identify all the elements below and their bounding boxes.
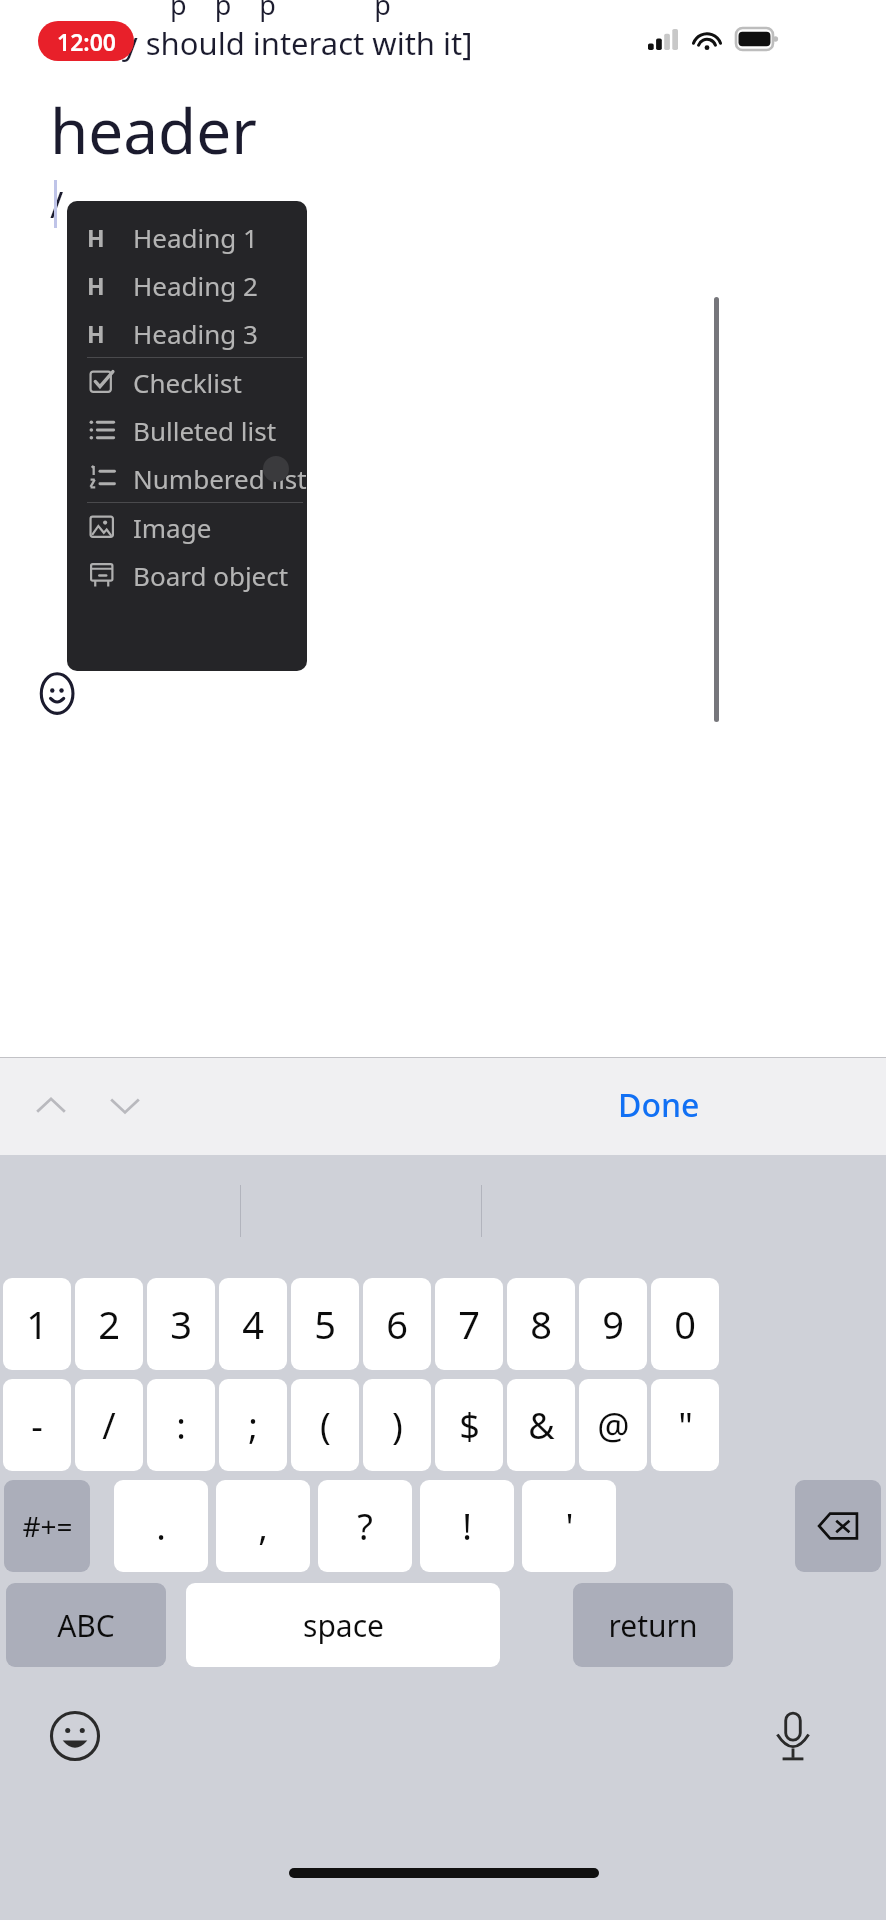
- button[interactable]: space: [186, 1583, 500, 1667]
- button[interactable]: 6: [363, 1278, 431, 1370]
- staticText: 3: [170, 1298, 192, 1350]
- button[interactable]: H3: [67, 309, 307, 357]
- button[interactable]: Image: [67, 503, 307, 551]
- staticText: .: [156, 1502, 166, 1551]
- staticText: @: [597, 1401, 630, 1450]
- staticText: Bulleted list: [133, 413, 277, 448]
- button[interactable]: H2: [67, 261, 307, 309]
- button[interactable]: ,: [216, 1480, 310, 1572]
- staticText: space: [303, 1605, 384, 1646]
- staticText: 8: [530, 1298, 552, 1350]
- button[interactable]: !: [420, 1480, 514, 1572]
- staticText: Board object: [133, 558, 289, 593]
- staticText: ': [565, 1502, 574, 1551]
- staticText: 5: [314, 1298, 336, 1350]
- staticText: 12:00: [57, 26, 116, 57]
- staticText: Numbered list: [133, 461, 307, 496]
- button[interactable]: Backspace: [795, 1480, 881, 1572]
- staticText: (: [320, 1401, 331, 1450]
- staticText: H2: [87, 270, 117, 300]
- staticText: return: [608, 1605, 698, 1646]
- staticText: 9: [602, 1298, 624, 1350]
- button[interactable]: ABC: [6, 1583, 166, 1667]
- button[interactable]: H1: [67, 213, 307, 261]
- staticText: /: [102, 1401, 116, 1450]
- button[interactable]: Board object: [67, 551, 307, 599]
- button[interactable]: $: [435, 1379, 503, 1471]
- staticText: Checklist: [133, 365, 242, 400]
- button[interactable]: Bulleted list: [67, 406, 307, 454]
- button[interactable]: Checklist: [67, 358, 307, 406]
- staticText: Heading 1: [133, 220, 258, 255]
- button[interactable]: Dictation: [762, 1705, 824, 1767]
- staticText: p p p p: [170, 0, 391, 23]
- button[interactable]: Previous field: [18, 1073, 84, 1139]
- staticText: /: [50, 180, 64, 229]
- button[interactable]: 9: [579, 1278, 647, 1370]
- staticText: Heading 2: [133, 268, 258, 303]
- button[interactable]: 0: [651, 1278, 719, 1370]
- button[interactable]: return: [573, 1583, 733, 1667]
- button[interactable]: Numbered list: [67, 454, 307, 502]
- staticText: header: [50, 88, 257, 172]
- button[interactable]: 2: [75, 1278, 143, 1370]
- button[interactable]: .: [114, 1480, 208, 1572]
- staticText: H1: [87, 222, 117, 252]
- staticText: 4: [242, 1298, 264, 1350]
- button[interactable]: Emoji: [44, 1705, 106, 1767]
- button[interactable]: ": [651, 1379, 719, 1471]
- staticText: !: [462, 1502, 472, 1551]
- staticText: H3: [87, 318, 117, 348]
- button[interactable]: 1: [3, 1278, 71, 1370]
- button[interactable]: 3: [147, 1278, 215, 1370]
- button[interactable]: ): [363, 1379, 431, 1471]
- button[interactable]: &: [507, 1379, 575, 1471]
- button[interactable]: 7: [435, 1278, 503, 1370]
- staticText: 0: [674, 1298, 696, 1350]
- button[interactable]: (: [291, 1379, 359, 1471]
- staticText: &: [528, 1401, 555, 1450]
- staticText: Image: [133, 510, 212, 545]
- button[interactable]: -: [3, 1379, 71, 1471]
- staticText: ABC: [57, 1605, 115, 1646]
- button[interactable]: /: [75, 1379, 143, 1471]
- button[interactable]: 4: [219, 1278, 287, 1370]
- button[interactable]: ': [522, 1480, 616, 1572]
- button[interactable]: 8: [507, 1278, 575, 1370]
- staticText: 1: [26, 1298, 48, 1350]
- staticText: Heading 3: [133, 316, 258, 351]
- button[interactable]: @: [579, 1379, 647, 1471]
- staticText: 6: [386, 1298, 408, 1350]
- staticText: ;: [248, 1401, 258, 1450]
- staticText: $: [459, 1401, 480, 1450]
- staticText: Done: [618, 1083, 700, 1127]
- staticText: ,: [258, 1502, 268, 1551]
- staticText: ": [678, 1401, 693, 1450]
- staticText: ey should interact with it]: [105, 22, 473, 64]
- button[interactable]: 5: [291, 1278, 359, 1370]
- button[interactable]: ;: [219, 1379, 287, 1471]
- button[interactable]: :: [147, 1379, 215, 1471]
- staticText: -: [31, 1401, 43, 1450]
- button[interactable]: ?: [318, 1480, 412, 1572]
- staticText: 7: [458, 1298, 480, 1350]
- staticText: 2: [98, 1298, 120, 1350]
- staticText: #+=: [22, 1507, 73, 1545]
- staticText: ?: [357, 1502, 373, 1551]
- button[interactable]: #+=: [4, 1480, 90, 1572]
- button[interactable]: Next field: [92, 1073, 158, 1139]
- staticText: ): [392, 1401, 403, 1450]
- button[interactable]: Done: [600, 1075, 718, 1135]
- staticText: :: [176, 1401, 186, 1450]
